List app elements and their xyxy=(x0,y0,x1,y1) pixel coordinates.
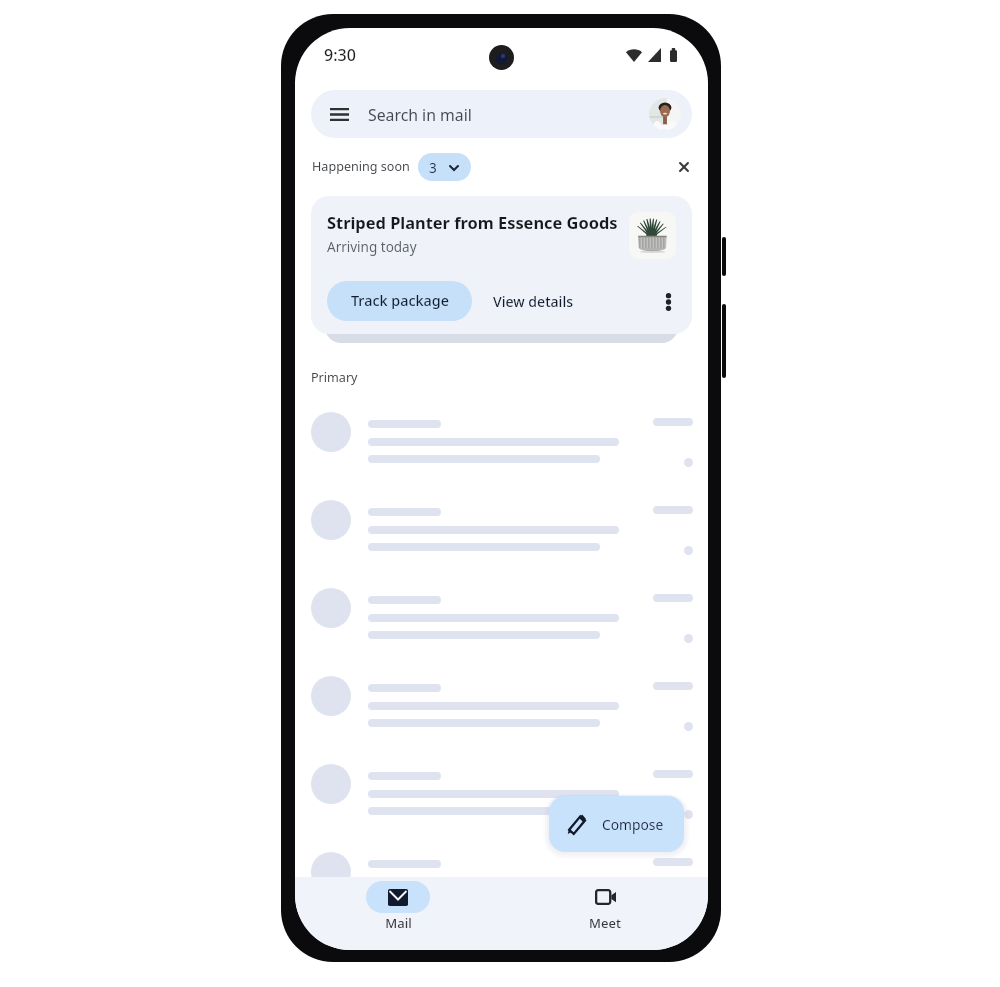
button[interactable]: Account xyxy=(649,98,681,130)
button[interactable]: Select sender xyxy=(311,764,351,804)
button[interactable]: Select sender xyxy=(311,412,351,452)
button[interactable]: Conversation xyxy=(295,400,708,488)
button[interactable]: Conversation xyxy=(295,840,708,928)
staticText: Compose xyxy=(602,815,664,834)
button[interactable]: Open navigation menu xyxy=(311,90,692,138)
staticText: View details xyxy=(493,292,574,311)
button[interactable]: More options xyxy=(650,284,686,320)
button[interactable]: Dismiss xyxy=(668,151,700,183)
button[interactable]: Select sender xyxy=(311,852,351,892)
button[interactable]: View details xyxy=(477,281,589,321)
staticText: Search in mail xyxy=(368,104,472,126)
button[interactable]: Compose new email xyxy=(549,796,684,852)
button[interactable]: 3 xyxy=(418,153,471,181)
button[interactable]: Striped Planter from Essence Goods xyxy=(311,196,692,334)
button[interactable]: Conversation xyxy=(295,488,708,576)
staticText: Happening soon xyxy=(312,158,410,175)
button[interactable]: Select sender xyxy=(311,676,351,716)
button[interactable]: Conversation xyxy=(295,752,708,840)
button[interactable]: Open navigation menu xyxy=(321,102,357,126)
button[interactable]: Select sender xyxy=(311,500,351,540)
staticText: Track package xyxy=(351,291,449,311)
staticText: Primary xyxy=(311,369,358,386)
button[interactable]: Meet xyxy=(501,877,708,932)
staticText: Meet xyxy=(589,914,621,932)
staticText: 3 xyxy=(429,159,437,177)
staticText: Mail xyxy=(385,914,412,932)
staticText: Arriving today xyxy=(327,238,417,256)
button[interactable]: Conversation xyxy=(295,664,708,752)
staticText: 9:30 xyxy=(324,44,356,66)
button[interactable]: Mail xyxy=(295,877,501,932)
button[interactable]: Conversation xyxy=(295,576,708,664)
button[interactable]: Track package xyxy=(327,281,472,321)
staticText: Striped Planter from Essence Goods xyxy=(327,211,618,233)
button[interactable]: Select sender xyxy=(311,588,351,628)
